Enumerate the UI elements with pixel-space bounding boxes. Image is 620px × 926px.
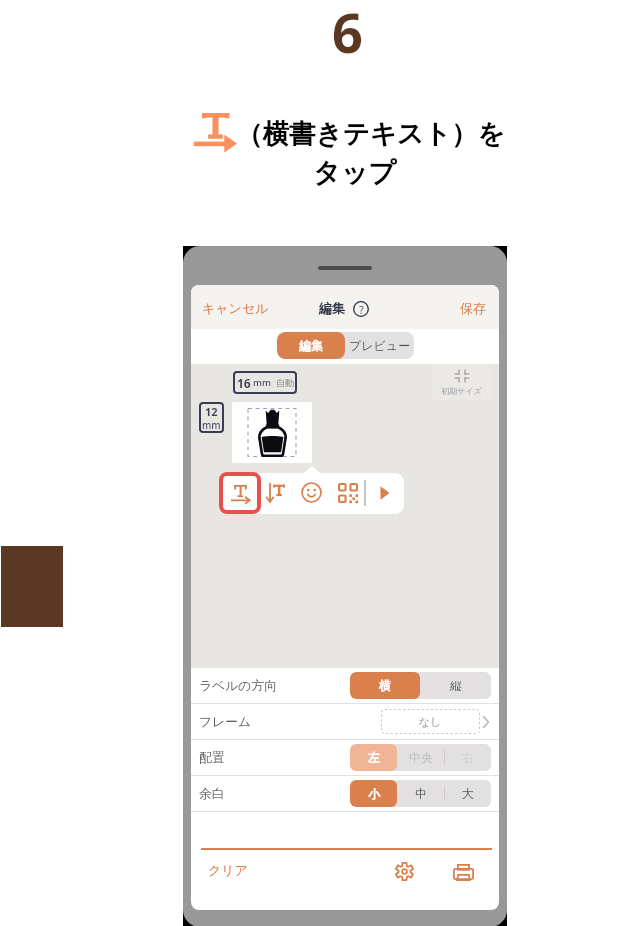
button[interactable]: ラベルの方向 <box>191 668 499 703</box>
staticText: 横 <box>379 678 391 693</box>
button[interactable]: 16 <box>233 371 297 394</box>
button[interactable]: Play <box>377 484 393 502</box>
button[interactable]: QR code <box>338 483 358 503</box>
staticText: 配置 <box>199 750 225 766</box>
button[interactable]: なし <box>381 709 480 734</box>
staticText: 大 <box>462 786 474 801</box>
staticText: 16 <box>237 375 251 391</box>
button[interactable]: 大 <box>444 780 491 807</box>
staticText: プレビュー <box>349 338 411 353</box>
button[interactable]: Emoji <box>301 482 322 503</box>
button[interactable]: 左 <box>350 744 397 771</box>
staticText: 小 <box>368 786 380 801</box>
button[interactable]: クリア <box>202 856 274 884</box>
staticText: ? <box>359 302 364 317</box>
button[interactable]: 中央 <box>397 744 444 771</box>
staticText: タップ <box>313 156 396 190</box>
button[interactable]: 編集 <box>277 332 345 359</box>
staticText: 右 <box>462 750 474 765</box>
button[interactable]: 初期サイズ <box>432 364 491 400</box>
button[interactable]: フレーム <box>191 704 499 739</box>
staticText: 余白 <box>199 786 225 802</box>
staticText: クリア <box>208 862 248 878</box>
button[interactable]: 中 <box>397 780 444 807</box>
staticText: 12 <box>205 404 218 419</box>
staticText: 編集 <box>299 338 323 353</box>
staticText: mm <box>202 419 221 432</box>
button[interactable]: 右 <box>444 744 491 771</box>
button[interactable]: Print <box>453 864 474 881</box>
staticText: 初期サイズ <box>441 386 482 396</box>
staticText: 中 <box>415 786 427 801</box>
staticText: 中央 <box>409 750 433 765</box>
button[interactable]: 配置 <box>191 740 499 775</box>
button[interactable]: 小 <box>350 780 397 807</box>
staticText: 自動 <box>276 377 294 388</box>
button[interactable]: 余白 <box>191 776 499 811</box>
staticText: 保存 <box>460 300 486 316</box>
staticText: キャンセル <box>202 300 269 316</box>
button[interactable]: キャンセル <box>196 296 268 320</box>
staticText: 縦 <box>450 678 462 693</box>
staticText: mm <box>253 376 271 389</box>
button[interactable]: プレビュー <box>345 332 414 359</box>
staticText: ラベルの方向 <box>199 678 277 694</box>
staticText: なし <box>419 715 442 729</box>
staticText: フレーム <box>199 714 252 730</box>
staticText: 編集 <box>319 300 345 316</box>
staticText: 左 <box>368 750 380 765</box>
button[interactable]: 縦 <box>420 672 491 699</box>
staticText: （横書きテキスト）を <box>236 117 505 150</box>
button[interactable]: 横 <box>350 672 420 699</box>
button[interactable]: Vertical text <box>266 483 285 502</box>
staticText: 6 <box>332 0 363 55</box>
button[interactable]: Settings <box>395 862 414 881</box>
button[interactable]: Horizontal text <box>219 472 261 514</box>
button[interactable]: Help <box>353 301 369 317</box>
button[interactable]: 12 <box>199 402 224 433</box>
button[interactable]: 保存 <box>443 296 493 320</box>
